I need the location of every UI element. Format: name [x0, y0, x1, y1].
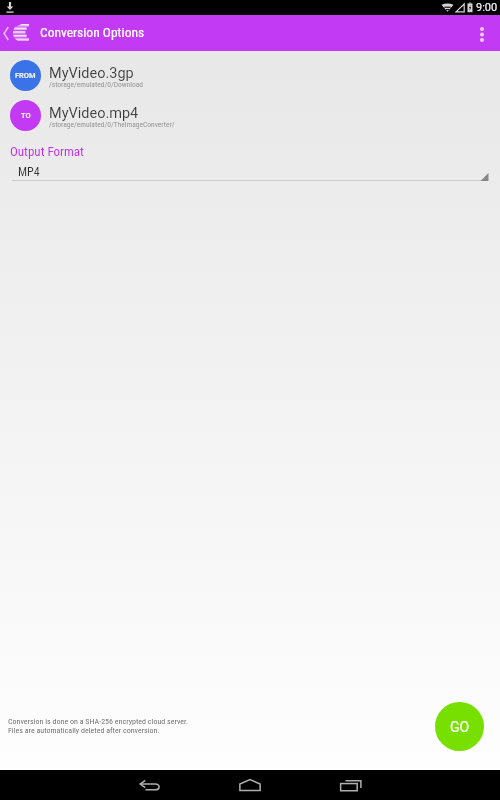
button[interactable]: Home: [209, 770, 291, 800]
button[interactable]: TO: [0, 100, 500, 131]
staticText: Output Format: [10, 144, 84, 159]
staticText: MyVideo.mp4: [49, 105, 139, 122]
button[interactable]: Back: [108, 770, 190, 800]
button[interactable]: MP4: [0, 159, 500, 185]
staticText: Conversion Options: [40, 24, 145, 40]
other: Download: [5, 2, 15, 13]
button[interactable]: More options: [463, 15, 500, 51]
staticText: Files are automatically deleted after co…: [8, 726, 160, 735]
button[interactable]: Navigate up: [0, 24, 32, 42]
staticText: FROM: [15, 71, 36, 80]
staticText: /storage/emulated/0/Download: [49, 80, 144, 89]
staticText: Conversion is done on a SHA-256 encrypte…: [8, 717, 189, 726]
staticText: MyVideo.3gp: [49, 65, 134, 82]
button[interactable]: FROM: [0, 60, 500, 91]
staticText: TO: [21, 111, 31, 120]
button[interactable]: GO: [435, 702, 484, 751]
staticText: /storage/emulated/0/TheImageConverter/: [49, 120, 175, 129]
button[interactable]: Recent apps: [310, 770, 392, 800]
staticText: 9:00: [476, 1, 498, 14]
staticText: MP4: [18, 165, 40, 179]
staticText: GO: [450, 719, 470, 735]
